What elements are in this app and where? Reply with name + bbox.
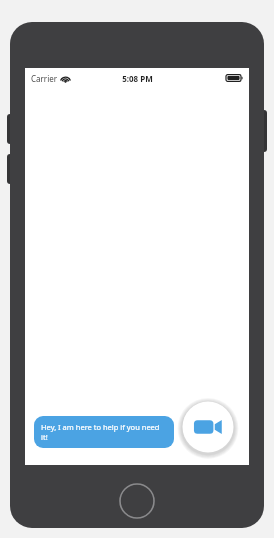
button[interactable]: Hey, I am here to help if you need it! bbox=[34, 416, 174, 448]
button[interactable]: Start video call bbox=[181, 400, 235, 454]
staticText: 5:08 PM bbox=[122, 73, 153, 84]
staticText: Carrier bbox=[31, 73, 58, 84]
other: Home bbox=[119, 483, 155, 519]
staticText: Hey, I am here to help if you need it! bbox=[41, 422, 167, 442]
